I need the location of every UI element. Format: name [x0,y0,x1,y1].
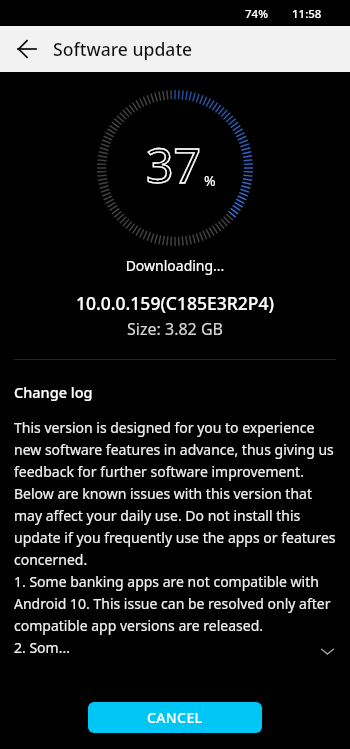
staticText: Downloading... [0,256,350,275]
staticText: This version is designed for you to expe… [14,418,336,657]
button[interactable]: CANCEL [88,702,262,733]
staticText: 11:58 [292,6,322,22]
staticText: % [204,171,216,190]
staticText: Size: 3.82 GB [0,318,350,340]
staticText: 74% [245,6,268,22]
button[interactable]: Expand change log [0,418,350,657]
staticText: Change log [14,382,93,402]
staticText: CANCEL [147,708,203,727]
staticText: Software update [53,37,193,61]
staticText: 10.0.0.159(C185E3R2P4) [0,291,350,315]
staticText: 37 [146,132,201,197]
button[interactable]: Back [0,26,46,72]
